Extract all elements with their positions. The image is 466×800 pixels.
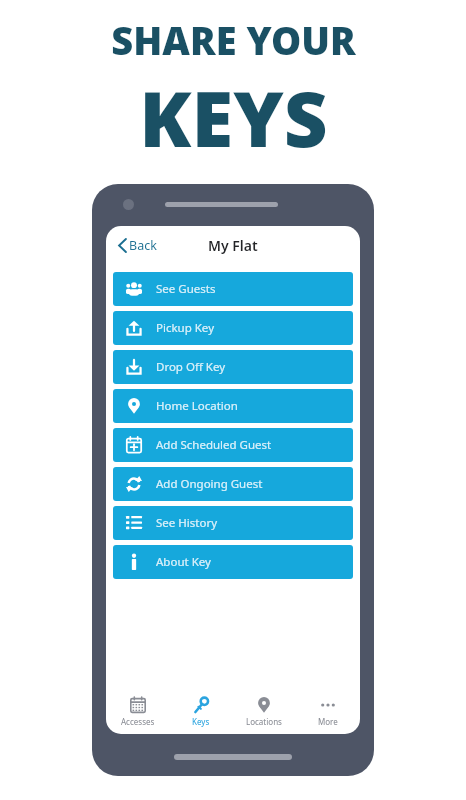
staticText: KEYS [139, 66, 328, 170]
other: Guests [126, 281, 142, 297]
button[interactable]: More [296, 690, 360, 734]
staticText: Home Location [156, 398, 238, 414]
staticText: My Flat [208, 236, 258, 255]
button[interactable]: Home Location [113, 389, 353, 423]
button[interactable]: Keys [169, 690, 232, 734]
staticText: See History [156, 515, 217, 531]
button[interactable]: Add Scheduled Guest [113, 428, 353, 462]
staticText: Back [129, 237, 157, 254]
button[interactable]: See History [113, 506, 353, 540]
button[interactable]: Pickup Key [113, 311, 353, 345]
staticText: Keys [192, 716, 210, 727]
staticText: Locations [246, 716, 282, 727]
button[interactable]: Add Ongoing Guest [113, 467, 353, 501]
staticText: Drop Off Key [156, 359, 226, 375]
button[interactable]: About Key [113, 545, 353, 579]
staticText: Accesses [121, 716, 155, 727]
staticText: Pickup Key [156, 320, 214, 336]
staticText: More [318, 716, 338, 727]
staticText: SHARE YOUR [111, 14, 356, 66]
staticText: See Guests [156, 281, 216, 297]
staticText: Add Ongoing Guest [156, 476, 263, 492]
button[interactable]: Accesses [106, 690, 169, 734]
button[interactable]: Back [114, 232, 161, 259]
button[interactable]: Locations [232, 690, 296, 734]
button[interactable]: Drop Off Key [113, 350, 353, 384]
staticText: Add Scheduled Guest [156, 437, 272, 453]
staticText: About Key [156, 554, 211, 570]
button[interactable]: Guests [113, 272, 353, 306]
